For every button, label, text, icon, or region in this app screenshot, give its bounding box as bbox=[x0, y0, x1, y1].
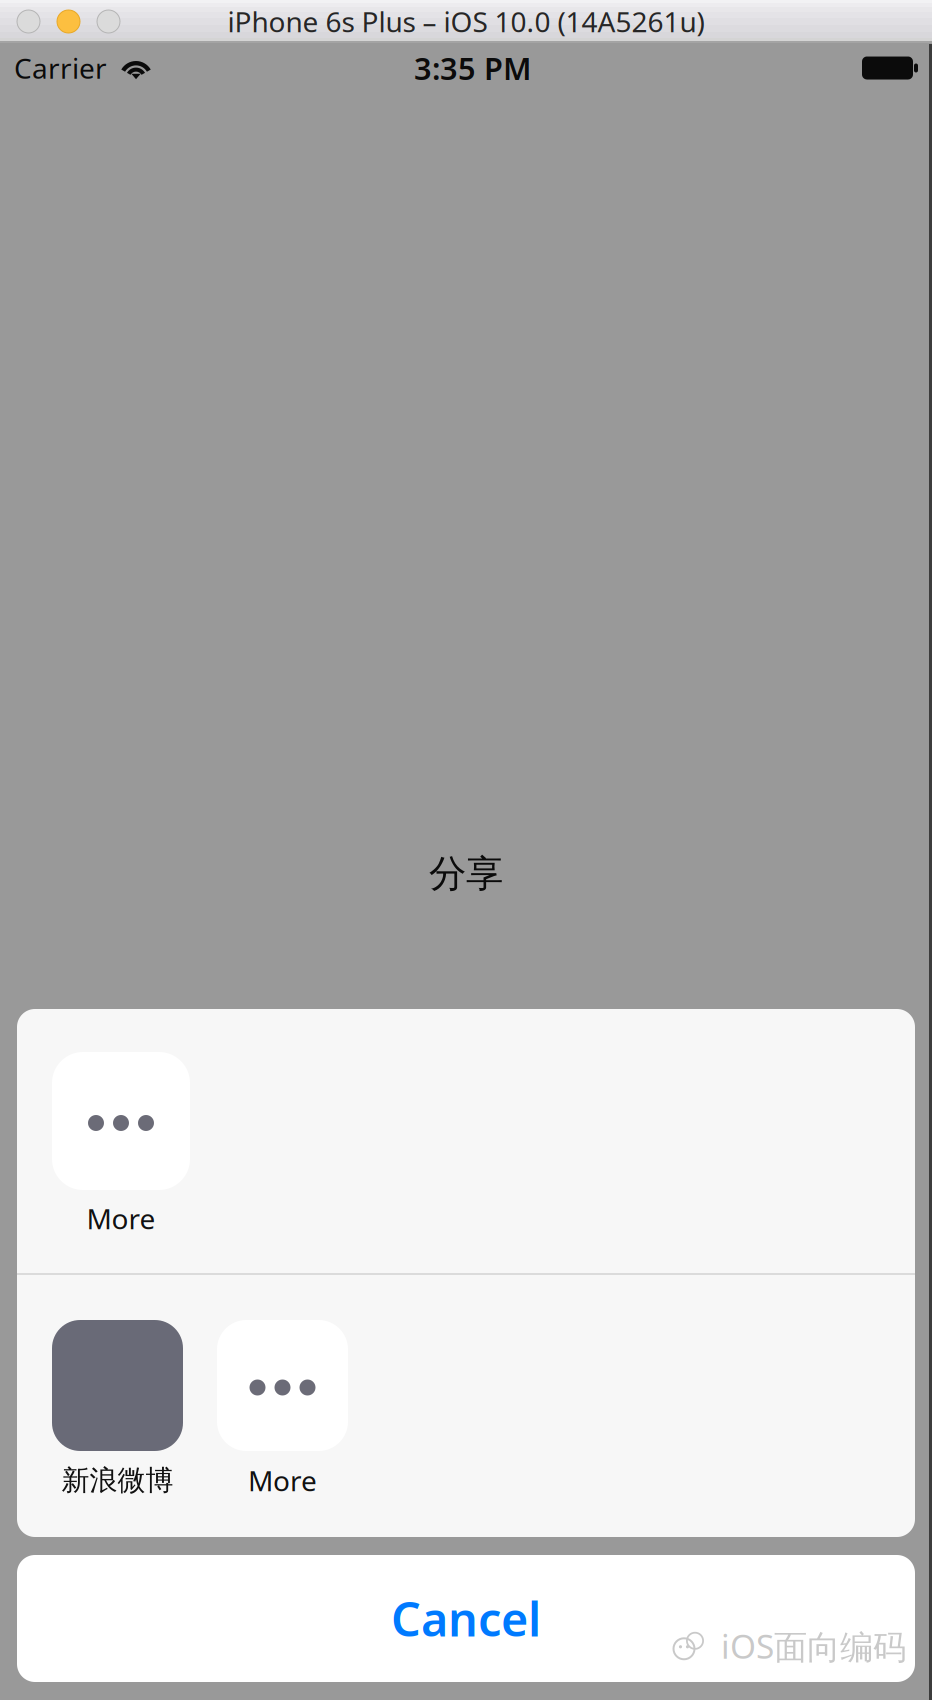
staticText: 新浪微博 bbox=[61, 1463, 173, 1498]
staticText: Carrier bbox=[14, 49, 107, 87]
staticText: iOS面向编码 bbox=[721, 1624, 906, 1668]
staticText: 分享 bbox=[429, 851, 503, 897]
staticText: 3:35 PM bbox=[414, 48, 531, 88]
staticText: iPhone 6s Plus – iOS 10.0 (14A5261u) bbox=[227, 3, 704, 40]
button[interactable]: More bbox=[52, 1052, 190, 1241]
button[interactable]: More bbox=[217, 1320, 348, 1503]
staticText: More bbox=[248, 1462, 317, 1499]
button[interactable]: 新浪微博 bbox=[52, 1320, 183, 1503]
staticText: More bbox=[86, 1200, 155, 1237]
button[interactable]: Cancel bbox=[17, 1555, 915, 1682]
staticText: Cancel bbox=[391, 1587, 541, 1649]
